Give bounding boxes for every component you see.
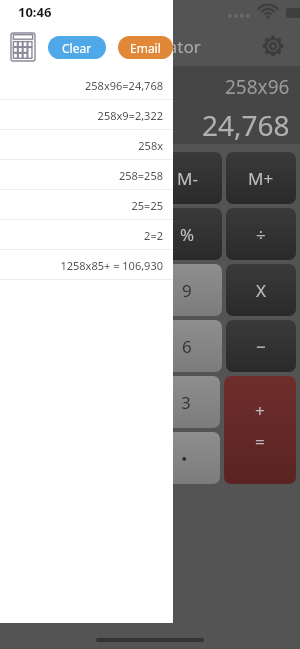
button[interactable]: 8 — [78, 264, 148, 316]
button[interactable]: X — [226, 264, 296, 316]
staticText: 258x96=24,768 — [85, 78, 163, 93]
button[interactable]: Clear — [48, 36, 106, 59]
staticText: MR — [100, 167, 126, 190]
button[interactable]: 7 — [4, 264, 74, 316]
button[interactable]: M- — [152, 152, 222, 204]
button[interactable]: C — [4, 208, 74, 260]
staticText: 10:46 — [18, 3, 52, 21]
staticText: 1258x85+ = 106,930 — [60, 258, 163, 273]
button[interactable]: 25=25 — [0, 190, 173, 220]
button[interactable]: 258x — [0, 130, 173, 160]
staticText: % — [180, 223, 195, 246]
staticText: 3 — [181, 391, 191, 414]
button[interactable]: M+ — [226, 152, 296, 204]
button[interactable]: 6 — [152, 320, 222, 372]
button[interactable]: ÷ — [226, 208, 296, 260]
staticText: 258x9=2,322 — [97, 108, 163, 123]
staticText: M+ — [248, 167, 274, 190]
staticText: 24,768 — [202, 106, 290, 144]
button[interactable]: MC — [4, 152, 74, 204]
staticText: X — [256, 279, 266, 302]
staticText: 7 — [34, 279, 44, 302]
staticText: + — [255, 399, 265, 422]
staticText: 6 — [182, 335, 192, 358]
button[interactable]: 9 — [152, 264, 222, 316]
staticText: 8 — [108, 279, 118, 302]
button[interactable]: +/- — [78, 208, 148, 260]
button[interactable]: Email — [118, 36, 173, 59]
button[interactable]: − — [226, 320, 296, 372]
button[interactable]: Settings — [256, 29, 290, 63]
staticText: Email — [130, 40, 161, 56]
staticText: ÷ — [256, 223, 266, 246]
staticText: Clear — [62, 40, 92, 56]
staticText: 9 — [182, 279, 192, 302]
staticText: 258x96 — [225, 74, 290, 100]
staticText: • — [181, 447, 188, 470]
button[interactable]: 3 — [151, 376, 220, 428]
button[interactable]: MR — [78, 152, 148, 204]
button[interactable]: 1258x85+ = 106,930 — [0, 250, 173, 280]
button[interactable]: 258x9=2,322 — [0, 100, 173, 130]
button[interactable]: • — [149, 432, 220, 484]
button[interactable]: 258=258 — [0, 160, 173, 190]
staticText: M- — [177, 167, 198, 190]
staticText: 25=25 — [131, 198, 163, 213]
staticText: MC — [26, 167, 53, 190]
staticText: = — [255, 430, 265, 453]
button[interactable]: 2=2 — [0, 220, 173, 250]
staticText: Calculator — [120, 35, 201, 58]
button[interactable]: Calculator — [8, 32, 38, 62]
button[interactable]: 258x96=24,768 — [0, 70, 173, 100]
staticText: − — [256, 335, 266, 358]
button[interactable]: % — [152, 208, 222, 260]
button[interactable]: + — [224, 376, 296, 484]
staticText: 258x — [138, 138, 163, 153]
staticText: 2=2 — [144, 228, 163, 243]
staticText: 258=258 — [118, 168, 163, 183]
